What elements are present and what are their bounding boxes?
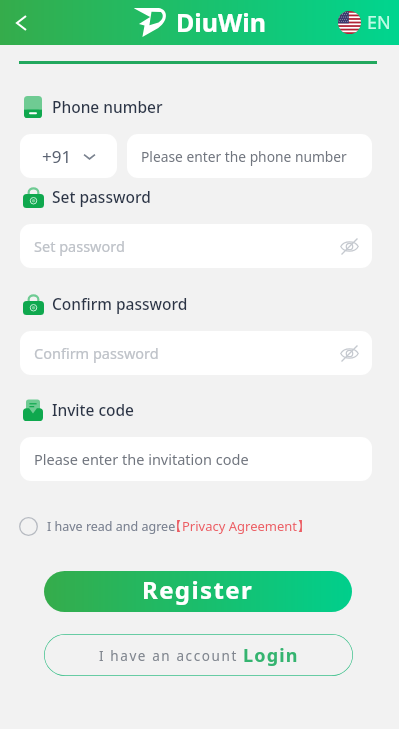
button[interactable]: Please enter the invitation code	[20, 437, 372, 481]
staticText: DiuWin	[176, 5, 266, 39]
staticText: Confirm password	[52, 293, 188, 314]
button[interactable]: I have read and agree	[19, 515, 318, 537]
button[interactable]: Please enter the phone number	[127, 134, 372, 178]
button[interactable]: Back	[4, 6, 38, 40]
staticText: Phone number	[52, 96, 163, 117]
staticText: Confirm password	[34, 343, 159, 363]
staticText: Set password	[34, 236, 125, 256]
button[interactable]: Set password	[20, 224, 372, 268]
button[interactable]: +91	[20, 134, 117, 178]
staticText: I have an account	[99, 647, 238, 665]
staticText: Please enter the phone number	[141, 147, 347, 166]
staticText: Login	[243, 643, 299, 668]
button[interactable]: Register	[44, 571, 352, 612]
button[interactable]: Confirm password	[20, 331, 372, 375]
button[interactable]: I have an account	[44, 634, 353, 676]
button[interactable]: Show password	[335, 339, 363, 367]
staticText: 【Privacy Agreement】	[169, 517, 311, 535]
staticText: +91	[42, 145, 72, 168]
staticText: Set password	[52, 186, 151, 207]
button[interactable]: Show password	[335, 232, 363, 260]
staticText: Register	[142, 573, 254, 606]
staticText: Please enter the invitation code	[34, 449, 249, 469]
staticText: Invite code	[52, 399, 135, 420]
staticText: EN	[367, 10, 391, 35]
staticText: I have read and agree	[47, 518, 176, 535]
button[interactable]: EN	[338, 10, 391, 35]
